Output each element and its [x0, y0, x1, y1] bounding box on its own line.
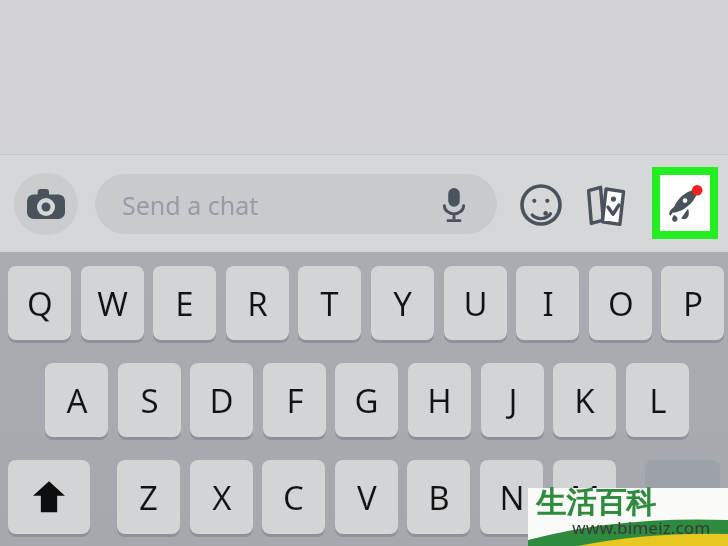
button[interactable]: Stickers — [581, 180, 633, 230]
staticText: Q — [27, 281, 53, 326]
staticText: Y — [393, 281, 412, 326]
staticText: E — [175, 281, 194, 326]
button[interactable]: Shift — [8, 460, 90, 537]
staticText: L — [649, 378, 667, 423]
staticText: www.bimeiz.com — [572, 516, 711, 539]
button[interactable]: X — [190, 460, 253, 537]
staticText: C — [283, 475, 304, 520]
staticText: T — [320, 281, 339, 326]
button[interactable]: W — [81, 266, 144, 343]
button[interactable]: S — [118, 363, 181, 440]
button[interactable]: D — [190, 363, 253, 440]
button[interactable]: K — [553, 363, 616, 440]
button[interactable]: U — [444, 266, 507, 343]
staticText: J — [508, 378, 518, 423]
button[interactable]: E — [153, 266, 216, 343]
button[interactable]: Z — [117, 460, 180, 537]
button[interactable]: Voice input — [433, 184, 475, 226]
button[interactable]: Send a chat — [95, 174, 497, 234]
staticText: 生活百科 — [536, 484, 656, 522]
staticText: M — [570, 475, 600, 520]
staticText: R — [247, 281, 268, 326]
button[interactable]: L — [626, 363, 689, 440]
staticText: W — [97, 281, 128, 326]
staticText: H — [427, 378, 452, 423]
button[interactable]: I — [516, 266, 579, 343]
staticText: V — [357, 475, 377, 520]
button[interactable]: B — [407, 460, 470, 537]
staticText: I — [542, 281, 554, 326]
staticText: K — [574, 378, 595, 423]
button[interactable]: O — [589, 266, 652, 343]
button[interactable]: Y — [371, 266, 434, 343]
staticText: S — [140, 378, 159, 423]
button[interactable]: Rocket — [652, 167, 718, 239]
button[interactable]: J — [481, 363, 544, 440]
staticText: D — [209, 378, 234, 423]
staticText: U — [463, 281, 488, 326]
button[interactable]: F — [263, 363, 326, 440]
staticText: Send a chat — [122, 188, 259, 222]
staticText: A — [66, 378, 88, 423]
button[interactable]: A — [45, 363, 108, 440]
button[interactable]: Q — [8, 266, 71, 343]
staticText: O — [608, 281, 634, 326]
staticText: X — [212, 475, 232, 520]
button[interactable]: H — [408, 363, 471, 440]
staticText: N — [499, 475, 525, 520]
button[interactable]: G — [335, 363, 398, 440]
staticText: F — [286, 378, 304, 423]
button[interactable]: N — [480, 460, 543, 537]
staticText: B — [428, 475, 450, 520]
staticText: G — [354, 378, 379, 423]
button[interactable]: M — [553, 460, 616, 537]
button[interactable]: V — [335, 460, 398, 537]
staticText: P — [683, 281, 703, 326]
button[interactable]: Emoji — [516, 180, 566, 230]
button[interactable]: R — [226, 266, 289, 343]
button[interactable]: T — [298, 266, 361, 343]
button[interactable]: Backspace — [645, 460, 720, 537]
button[interactable]: Camera — [14, 173, 78, 235]
button[interactable]: C — [262, 460, 325, 537]
staticText: Z — [139, 475, 158, 520]
button[interactable]: P — [661, 266, 724, 343]
